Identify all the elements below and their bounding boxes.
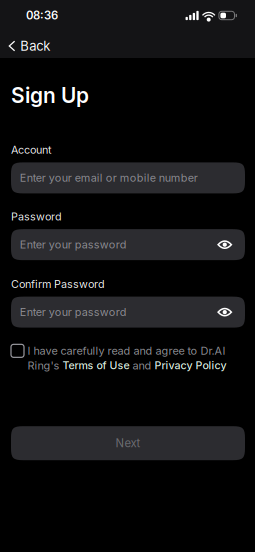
button[interactable]: Show password [204, 229, 245, 260]
button[interactable]: Terms of Use [63, 359, 130, 372]
staticText: Password [11, 210, 62, 223]
button[interactable]: Back [0, 31, 50, 58]
staticText: Sign Up [11, 83, 89, 108]
staticText: Account [11, 143, 52, 156]
staticText: I have carefully read and agree to Dr.AI [28, 344, 226, 357]
staticText: and [130, 359, 155, 372]
staticText: Enter your password [20, 238, 127, 251]
button[interactable]: Show password [204, 297, 245, 328]
staticText: Enter your email or mobile number [20, 171, 198, 184]
button[interactable]: Agree to terms [11, 344, 24, 357]
staticText: 08:36 [26, 9, 58, 22]
staticText: Privacy Policy [155, 359, 227, 372]
staticText: Enter your password [20, 306, 127, 319]
staticText: Terms of Use [63, 359, 130, 372]
staticText: Ring's [28, 359, 63, 372]
button[interactable]: Privacy Policy [155, 359, 227, 372]
staticText: Back [20, 38, 50, 54]
staticText: Next [115, 436, 140, 450]
button[interactable]: Next [11, 426, 245, 460]
staticText: Confirm Password [11, 277, 105, 291]
